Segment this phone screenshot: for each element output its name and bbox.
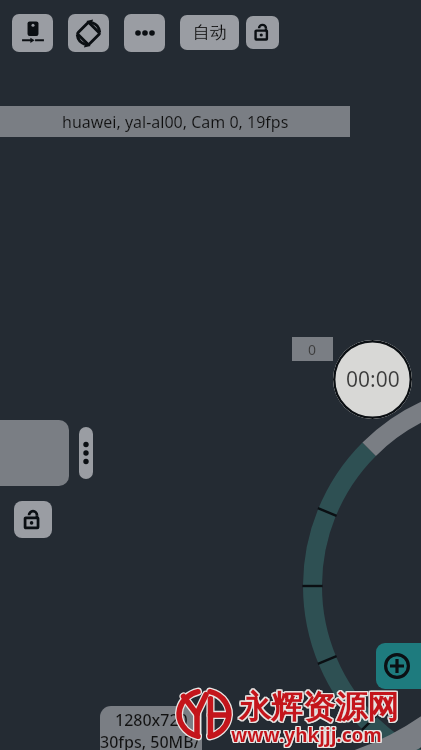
staticText: www.yhkjjj.com — [232, 723, 383, 749]
button[interactable]: Add camera — [376, 643, 421, 689]
staticText: 永辉资源网 — [239, 687, 399, 727]
staticText: www.yhkjjj.com — [232, 722, 383, 748]
staticText: 永辉资源网 — [240, 686, 400, 726]
staticText: 永辉资源网 — [239, 688, 399, 728]
staticText: 00:00 — [346, 365, 400, 394]
staticText: 30fps, 50MB/s — [100, 731, 202, 750]
staticText: 永辉资源网 — [238, 686, 398, 726]
staticText: www.yhkjjj.com — [231, 723, 382, 749]
staticText: 自动 — [193, 22, 227, 43]
staticText: www.yhkjjj.com — [230, 723, 381, 749]
staticText: huawei, yal-al00, Cam 0, 19fps — [62, 111, 289, 133]
button[interactable]: 自动 — [180, 15, 239, 50]
staticText: 永辉资源网 — [239, 686, 399, 726]
button[interactable]: Lock exposure — [14, 501, 52, 538]
button[interactable]: Screen rotation — [68, 14, 109, 52]
staticText: 永辉资源网 — [238, 688, 398, 728]
staticText: www.yhkjjj.com — [230, 721, 381, 747]
button[interactable]: Drag handle — [79, 427, 93, 479]
button[interactable]: Preview — [0, 420, 69, 486]
staticText: www.yhkjjj.com — [231, 721, 382, 747]
button[interactable]: 00:00 — [333, 340, 412, 419]
button[interactable]: Cast screen — [12, 14, 53, 52]
button[interactable]: More options — [124, 14, 165, 52]
button[interactable]: Unlock orientation — [246, 16, 279, 49]
staticText: 永辉资源网 — [240, 687, 400, 727]
staticText: www.yhkjjj.com — [230, 722, 381, 748]
staticText: 0 — [308, 340, 317, 359]
staticText: www.yhkjjj.com — [232, 721, 383, 747]
staticText: 永辉资源网 — [240, 688, 400, 728]
staticText: 1280x720 — [115, 709, 188, 731]
staticText: 永辉资源网 — [238, 687, 398, 727]
button[interactable]: 1280x720 — [100, 706, 202, 750]
staticText: www.yhkjjj.com — [231, 722, 382, 748]
